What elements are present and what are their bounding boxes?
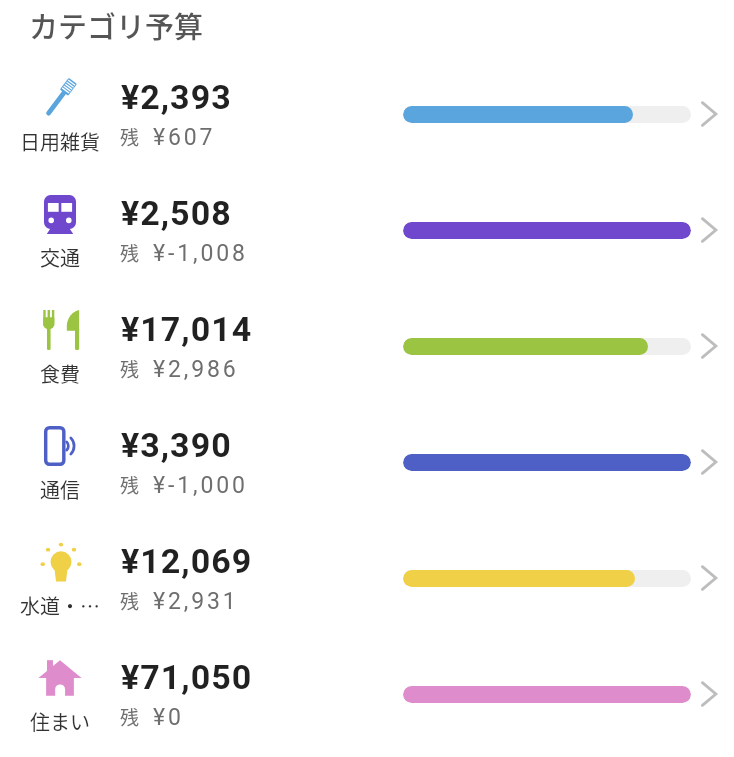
other: Open 水道・… budget detail: [698, 564, 720, 592]
staticText: ¥-1,008: [153, 240, 248, 267]
staticText: 残: [120, 123, 140, 151]
staticText: 交通: [40, 243, 80, 272]
other: Open 通信 budget detail: [698, 448, 720, 476]
staticText: ¥2,508: [121, 193, 232, 233]
staticText: 水道・…: [20, 591, 100, 620]
button[interactable]: 住まい: [0, 636, 734, 752]
staticText: 残: [120, 471, 140, 499]
other: Open 住まい budget detail: [698, 680, 720, 708]
button[interactable]: 交通: [0, 172, 734, 288]
staticText: 日用雑貨: [20, 127, 100, 156]
staticText: 残: [120, 587, 140, 615]
staticText: 通信: [40, 475, 80, 504]
button[interactable]: 食費: [0, 288, 734, 404]
staticText: ¥0: [153, 704, 184, 731]
other: Open 日用雑貨 budget detail: [698, 100, 720, 128]
button[interactable]: 水道・…: [0, 520, 734, 636]
other: Open 食費 budget detail: [698, 332, 720, 360]
button[interactable]: 日用雑貨: [0, 56, 734, 172]
staticText: 住まい: [30, 707, 90, 736]
staticText: ¥12,069: [121, 541, 253, 581]
other: Open 交通 budget detail: [698, 216, 720, 244]
button[interactable]: 通信: [0, 404, 734, 520]
staticText: ¥607: [153, 124, 216, 151]
staticText: 残: [120, 239, 140, 267]
staticText: ¥2,931: [153, 588, 239, 615]
staticText: カテゴリ予算: [29, 4, 204, 46]
staticText: 食費: [40, 359, 80, 388]
staticText: ¥17,014: [121, 309, 253, 349]
staticText: ¥-1,000: [153, 472, 248, 499]
staticText: ¥71,050: [121, 657, 253, 697]
staticText: ¥2,986: [153, 356, 239, 383]
staticText: 残: [120, 703, 140, 731]
staticText: ¥3,390: [121, 425, 232, 465]
staticText: 残: [120, 355, 140, 383]
staticText: ¥2,393: [121, 77, 232, 117]
